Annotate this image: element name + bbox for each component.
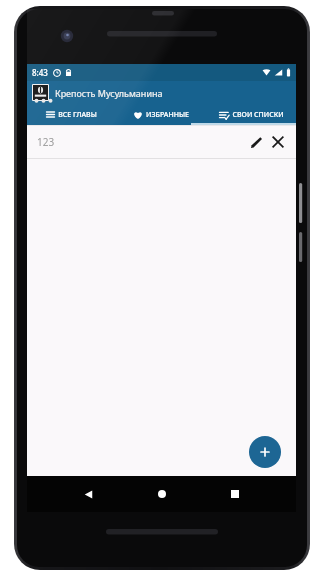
staticText: ВСЕ ГЛАВЫ (58, 110, 97, 120)
staticText: 8:43 (32, 67, 48, 78)
button[interactable]: СВОИ СПИСКИ (206, 104, 296, 125)
staticText: СВОИ СПИСКИ (232, 110, 284, 120)
staticText: 123 (37, 135, 55, 149)
button[interactable]: Edit (246, 132, 266, 152)
button[interactable]: ВСЕ ГЛАВЫ (27, 104, 116, 125)
button[interactable]: Add list (249, 436, 281, 468)
button[interactable]: 123 (27, 126, 296, 158)
button[interactable]: ИЗБРАННЫЕ (116, 104, 206, 125)
staticText: ИЗБРАННЫЕ (146, 110, 189, 120)
button[interactable]: Back (75, 481, 101, 507)
button[interactable]: Delete (268, 132, 288, 152)
button[interactable]: Recents (222, 481, 248, 507)
staticText: Крепость Мусульманина (55, 87, 163, 99)
button[interactable]: Home (149, 481, 175, 507)
